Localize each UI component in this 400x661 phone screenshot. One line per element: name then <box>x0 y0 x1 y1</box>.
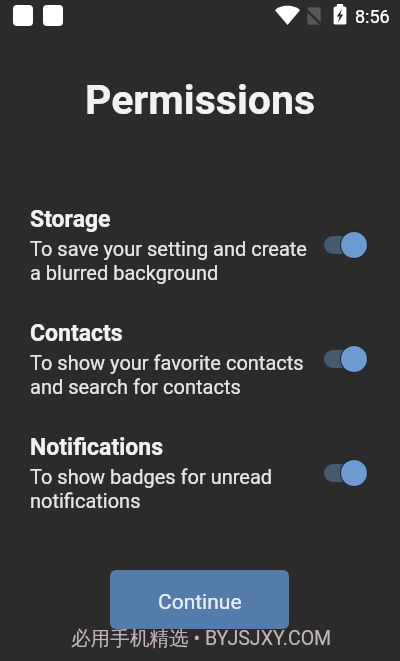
button[interactable]: Storage <box>0 206 400 285</box>
button[interactable]: Notifications <box>0 434 400 513</box>
button[interactable]: Continue <box>110 570 289 629</box>
staticText: To show your favorite contacts and searc… <box>30 351 304 399</box>
staticText: 8:56 <box>355 6 390 27</box>
staticText: To show badges for unread notifications <box>30 465 273 513</box>
staticText: Contacts <box>30 320 123 347</box>
staticText: Continue <box>158 590 242 615</box>
button[interactable]: Toggle permission <box>323 339 368 379</box>
button[interactable]: Contacts <box>0 320 400 399</box>
button[interactable]: Toggle permission <box>323 225 368 265</box>
staticText: Storage <box>30 206 111 233</box>
staticText: Permissions <box>0 76 400 124</box>
staticText: Notifications <box>30 434 164 461</box>
button[interactable]: Toggle permission <box>323 453 368 493</box>
staticText: 必用手机精选 • BYJSJXY.COM <box>71 626 332 651</box>
staticText: To save your setting and create a blurre… <box>30 237 307 285</box>
